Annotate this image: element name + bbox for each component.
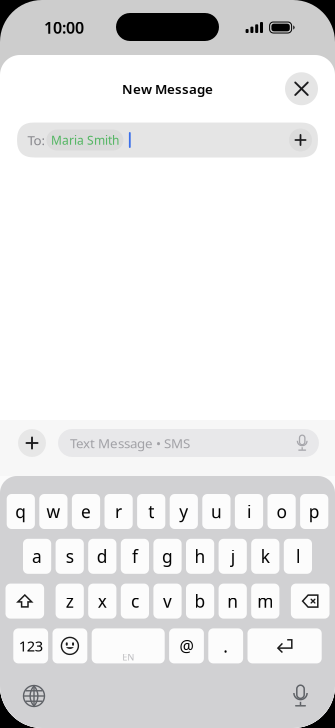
button[interactable]: d: [88, 539, 116, 574]
button[interactable]: h: [186, 539, 214, 574]
staticText: k: [261, 545, 270, 568]
button[interactable]: Add contact: [289, 128, 312, 151]
button[interactable]: o: [267, 494, 296, 529]
staticText: h: [195, 545, 206, 568]
staticText: EN: [122, 651, 134, 663]
staticText: 10:00: [44, 17, 84, 38]
button[interactable]: f: [121, 539, 149, 574]
button[interactable]: b: [186, 584, 214, 619]
staticText: a: [32, 545, 42, 568]
button[interactable]: Emoji: [52, 628, 87, 663]
staticText: Maria Smith: [51, 132, 119, 148]
button[interactable]: @: [169, 628, 204, 663]
staticText: y: [179, 500, 188, 523]
staticText: @: [179, 635, 193, 656]
button[interactable]: e: [72, 494, 100, 529]
button[interactable]: .: [208, 628, 243, 663]
button[interactable]: m: [251, 584, 279, 619]
staticText: New Message: [122, 80, 213, 98]
staticText: d: [97, 545, 108, 568]
staticText: o: [277, 500, 287, 523]
button[interactable]: Return: [247, 628, 322, 663]
button[interactable]: c: [121, 584, 149, 619]
staticText: f: [132, 545, 138, 568]
staticText: j: [231, 545, 235, 568]
button[interactable]: s: [56, 539, 84, 574]
button[interactable]: k: [251, 539, 279, 574]
button[interactable]: Shift: [5, 584, 44, 619]
staticText: w: [46, 500, 60, 523]
staticText: z: [66, 590, 74, 613]
button[interactable]: l: [284, 539, 312, 574]
button[interactable]: space: [92, 628, 165, 663]
button[interactable]: Delete: [291, 584, 329, 619]
button[interactable]: Close: [285, 72, 318, 105]
button[interactable]: z: [56, 584, 84, 619]
staticText: i: [247, 500, 251, 523]
staticText: Text Message • SMS: [70, 434, 190, 452]
button[interactable]: p: [300, 494, 328, 529]
button[interactable]: g: [153, 539, 182, 574]
staticText: b: [195, 590, 206, 613]
button[interactable]: v: [153, 584, 182, 619]
button[interactable]: a: [23, 539, 51, 574]
staticText: p: [309, 500, 320, 523]
button[interactable]: Dictate: [280, 676, 320, 716]
staticText: 123: [19, 636, 43, 656]
button[interactable]: x: [88, 584, 116, 619]
button[interactable]: j: [219, 539, 247, 574]
button[interactable]: w: [39, 494, 67, 529]
button[interactable]: u: [202, 494, 230, 529]
button[interactable]: i: [235, 494, 263, 529]
staticText: g: [162, 545, 173, 568]
button[interactable]: 123: [13, 628, 48, 663]
button[interactable]: q: [7, 494, 35, 529]
button[interactable]: y: [170, 494, 198, 529]
staticText: c: [131, 590, 139, 613]
staticText: s: [66, 545, 74, 568]
staticText: l: [296, 545, 300, 568]
staticText: v: [163, 590, 172, 613]
button[interactable]: r: [104, 494, 133, 529]
button[interactable]: n: [219, 584, 247, 619]
staticText: m: [257, 590, 273, 613]
staticText: r: [115, 500, 122, 523]
staticText: To:: [27, 131, 45, 149]
staticText: t: [148, 500, 154, 523]
staticText: u: [211, 500, 222, 523]
staticText: n: [227, 590, 238, 613]
staticText: x: [98, 590, 107, 613]
button[interactable]: Switch keyboard: [14, 676, 54, 716]
staticText: e: [81, 500, 91, 523]
button[interactable]: Attach: [18, 429, 46, 457]
staticText: .: [223, 634, 228, 657]
staticText: q: [15, 500, 26, 523]
button[interactable]: t: [137, 494, 165, 529]
